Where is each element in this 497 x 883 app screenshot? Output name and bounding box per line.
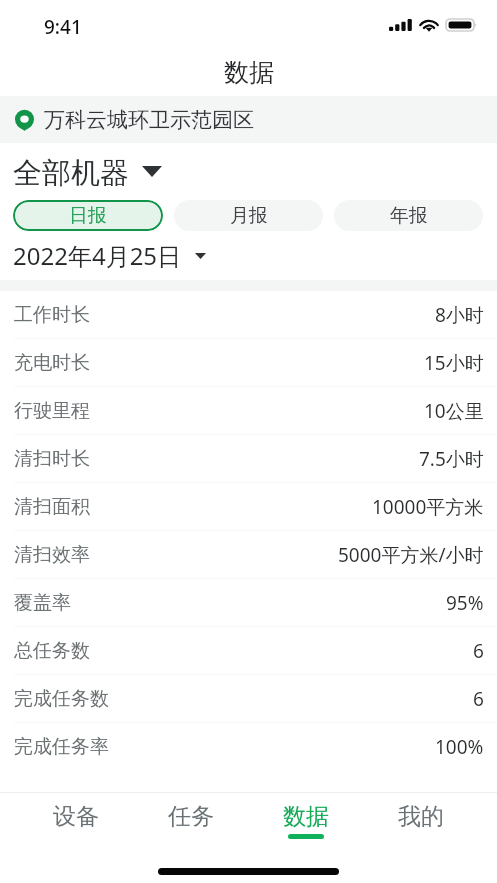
staticText: 9:41 [44, 14, 82, 40]
staticText: 6 [473, 686, 484, 712]
button[interactable]: 充电时长 [0, 339, 497, 387]
button[interactable]: 设备 [19, 793, 133, 847]
staticText: 清扫面积 [14, 495, 90, 519]
staticText: 2022年4月25日 [13, 239, 182, 272]
staticText: 数据 [224, 57, 274, 88]
button[interactable]: 完成任务率 [0, 723, 497, 771]
button[interactable]: 清扫面积 [0, 483, 497, 531]
staticText: 总任务数 [14, 639, 90, 663]
staticText: 7.5小时 [419, 446, 484, 472]
staticText: 清扫时长 [14, 447, 90, 471]
staticText: 日报 [69, 204, 107, 228]
staticText: 10000平方米 [372, 494, 484, 520]
button[interactable]: 清扫效率 [0, 531, 497, 579]
button[interactable]: 覆盖率 [0, 579, 497, 627]
staticText: 清扫效率 [14, 543, 90, 567]
button[interactable]: 工作时长 [0, 291, 497, 339]
staticText: 万科云城环卫示范园区 [44, 107, 254, 133]
staticText: 95% [446, 590, 484, 616]
staticText: 设备 [53, 802, 99, 831]
staticText: 6 [473, 638, 484, 664]
button[interactable]: 日报 [13, 200, 163, 231]
staticText: 数据 [283, 802, 329, 831]
button[interactable]: 清扫时长 [0, 435, 497, 483]
staticText: 全部机器 [13, 155, 129, 192]
button[interactable]: 数据 [248, 793, 363, 847]
staticText: 15小时 [424, 350, 484, 376]
staticText: 月报 [230, 204, 268, 228]
button[interactable]: 我的 [363, 793, 478, 847]
staticText: 我的 [398, 802, 444, 831]
staticText: 10公里 [424, 398, 484, 424]
button[interactable]: 完成任务数 [0, 675, 497, 723]
staticText: 完成任务数 [14, 687, 109, 711]
button[interactable]: 月报 [174, 200, 323, 231]
staticText: 行驶里程 [14, 399, 90, 423]
staticText: 完成任务率 [14, 735, 109, 759]
staticText: 充电时长 [14, 351, 90, 375]
button[interactable]: 选择日期：2022年4月25日 [13, 239, 206, 272]
staticText: 100% [435, 734, 484, 760]
button[interactable]: 选择机器：全部机器 [13, 155, 162, 192]
button[interactable]: 任务 [133, 793, 248, 847]
button[interactable]: 总任务数 [0, 627, 497, 675]
staticText: 任务 [168, 802, 214, 831]
button[interactable]: 当前园区：万科云城环卫示范园区 [0, 96, 497, 143]
staticText: 工作时长 [14, 303, 90, 327]
button[interactable]: 行驶里程 [0, 387, 497, 435]
staticText: 覆盖率 [14, 591, 71, 615]
staticText: 年报 [390, 204, 428, 228]
staticText: 8小时 [435, 302, 484, 328]
staticText: 5000平方米/小时 [338, 542, 484, 568]
button[interactable]: 年报 [334, 200, 483, 231]
